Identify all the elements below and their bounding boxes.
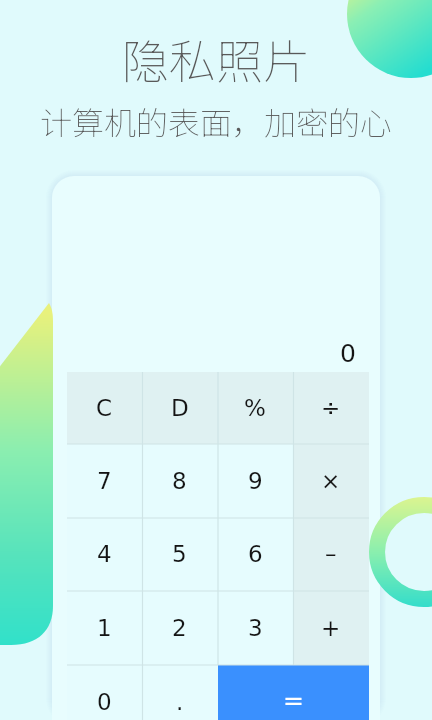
button[interactable]: 0: [67, 665, 142, 720]
button[interactable]: 4: [67, 518, 142, 591]
staticText: 5: [172, 541, 187, 568]
staticText: %: [244, 395, 266, 422]
button[interactable]: C: [67, 372, 142, 444]
button[interactable]: ÷: [293, 372, 369, 444]
staticText: 1: [97, 615, 112, 642]
staticText: 4: [97, 541, 112, 568]
staticText: 8: [172, 468, 187, 495]
button[interactable]: 7: [67, 444, 142, 518]
staticText: 0: [97, 689, 112, 716]
staticText: –: [325, 541, 337, 568]
staticText: =: [283, 686, 304, 715]
staticText: 6: [248, 541, 263, 568]
button[interactable]: D: [142, 372, 217, 444]
staticText: 0: [340, 339, 356, 368]
button[interactable]: 9: [217, 444, 293, 518]
button[interactable]: 8: [142, 444, 217, 518]
button[interactable]: %: [217, 372, 293, 444]
staticText: 7: [97, 468, 112, 495]
button[interactable]: .: [142, 665, 218, 720]
staticText: D: [171, 395, 189, 422]
button[interactable]: =: [218, 665, 369, 720]
button[interactable]: ×: [293, 444, 369, 518]
staticText: +: [321, 615, 341, 642]
staticText: C: [96, 395, 113, 422]
staticText: 9: [248, 468, 263, 495]
button[interactable]: –: [293, 518, 369, 591]
button[interactable]: 3: [217, 591, 293, 665]
staticText: 隐私照片: [0, 24, 432, 92]
staticText: ÷: [321, 395, 341, 422]
staticText: 计算机的表面，加密的心: [0, 98, 432, 144]
staticText: ×: [321, 468, 341, 495]
button[interactable]: 1: [67, 591, 142, 665]
staticText: .: [176, 689, 184, 716]
staticText: 2: [172, 615, 187, 642]
button[interactable]: 5: [142, 518, 217, 591]
button[interactable]: +: [293, 591, 369, 665]
staticText: 3: [248, 615, 263, 642]
button[interactable]: 6: [217, 518, 293, 591]
button[interactable]: 2: [142, 591, 217, 665]
